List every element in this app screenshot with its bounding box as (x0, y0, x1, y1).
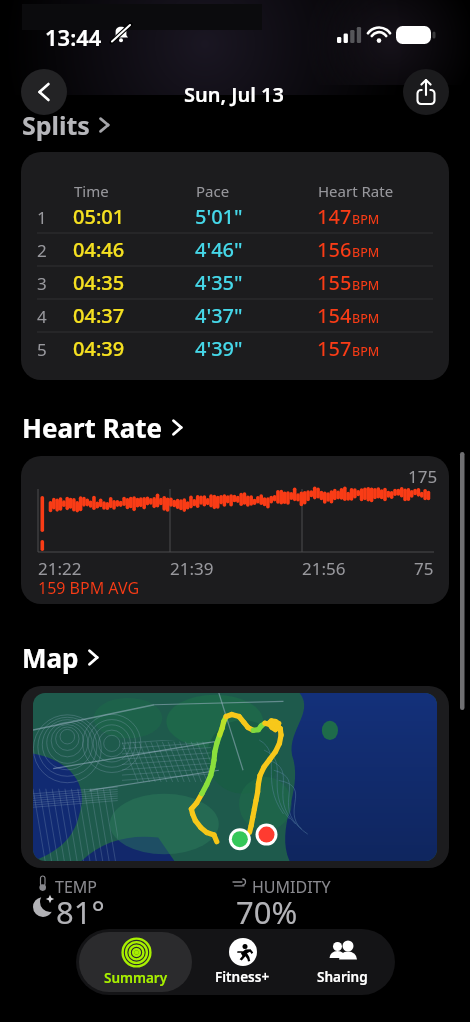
staticText: 04:46 (73, 236, 125, 263)
staticText: Fitness+ (215, 968, 270, 986)
staticText: 157 (317, 335, 352, 362)
button[interactable]: Fitness+ (192, 932, 292, 992)
staticText: 04:35 (73, 269, 125, 296)
staticText: 4'39" (195, 335, 243, 362)
button[interactable] (21, 456, 449, 604)
button[interactable]: Back (21, 69, 67, 115)
button[interactable]: Splits (22, 108, 111, 142)
staticText: 04:37 (73, 302, 125, 329)
staticText: 2 (37, 239, 47, 262)
staticText: 13:44 (45, 22, 102, 52)
staticText: Time (74, 181, 109, 201)
staticText: Sun, Jul 13 (184, 81, 284, 108)
button[interactable]: Workout route map (33, 693, 437, 861)
staticText: 21:22 (38, 557, 82, 580)
button[interactable]: Sharing (292, 932, 392, 992)
staticText: 04:39 (73, 335, 125, 362)
staticText: Pace (196, 181, 230, 201)
staticText: 5 (37, 338, 47, 361)
staticText: Heart Rate (318, 181, 394, 201)
staticText: 159 BPM AVG (38, 577, 140, 599)
staticText: Heart Rate (22, 410, 163, 445)
staticText: 21:39 (170, 557, 214, 580)
staticText: BPM (352, 343, 380, 360)
staticText: 4 (37, 305, 47, 328)
staticText: 4'37" (195, 302, 243, 329)
staticText: 21:56 (302, 557, 346, 580)
button[interactable]: Summary (79, 932, 192, 992)
staticText: 05:01 (73, 203, 125, 230)
staticText: 156 (317, 236, 352, 263)
staticText: Sharing (317, 968, 368, 986)
staticText: BPM (352, 211, 380, 228)
staticText: BPM (352, 310, 380, 327)
staticText: 175 (408, 465, 438, 488)
staticText: HUMIDITY (252, 876, 331, 898)
staticText: Splits (22, 108, 90, 142)
staticText: 5'01" (195, 203, 243, 230)
staticText: 70% (236, 891, 298, 933)
staticText: Map (22, 640, 79, 675)
staticText: 3 (37, 272, 47, 295)
staticText: TEMP (55, 876, 97, 898)
button[interactable]: Map (22, 640, 100, 675)
staticText: 75 (414, 557, 434, 580)
staticText: 81° (56, 891, 105, 933)
staticText: 1 (37, 206, 47, 229)
button[interactable]: Heart Rate (22, 410, 184, 445)
staticText: 155 (317, 269, 352, 296)
staticText: 147 (317, 203, 352, 230)
staticText: 4'35" (195, 269, 243, 296)
staticText: BPM (352, 244, 380, 261)
button[interactable]: Share (403, 69, 449, 115)
staticText: 154 (317, 302, 352, 329)
staticText: Summary (104, 969, 168, 987)
button[interactable] (21, 152, 449, 380)
staticText: BPM (352, 277, 380, 294)
staticText: 4'46" (195, 236, 243, 263)
